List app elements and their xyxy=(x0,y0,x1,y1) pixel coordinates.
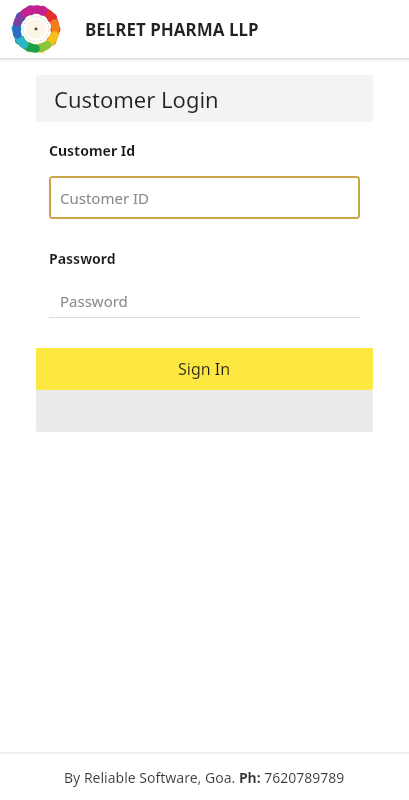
button[interactable]: Customer ID xyxy=(49,176,360,219)
staticText: BELRET PHARMA LLP xyxy=(85,18,259,41)
staticText: Password xyxy=(49,249,116,268)
button[interactable]: Sign In xyxy=(36,348,373,390)
button[interactable]: Password xyxy=(49,284,360,318)
staticText: Password xyxy=(60,291,128,311)
staticText: Customer Id xyxy=(49,141,136,160)
staticText: Customer Login xyxy=(54,84,219,114)
staticText: By Reliable Software, Goa. Ph: 762078978… xyxy=(64,768,345,787)
other: Belret Pharma logo xyxy=(9,2,63,56)
staticText: Customer ID xyxy=(60,188,150,208)
staticText: Sign In xyxy=(178,358,231,380)
